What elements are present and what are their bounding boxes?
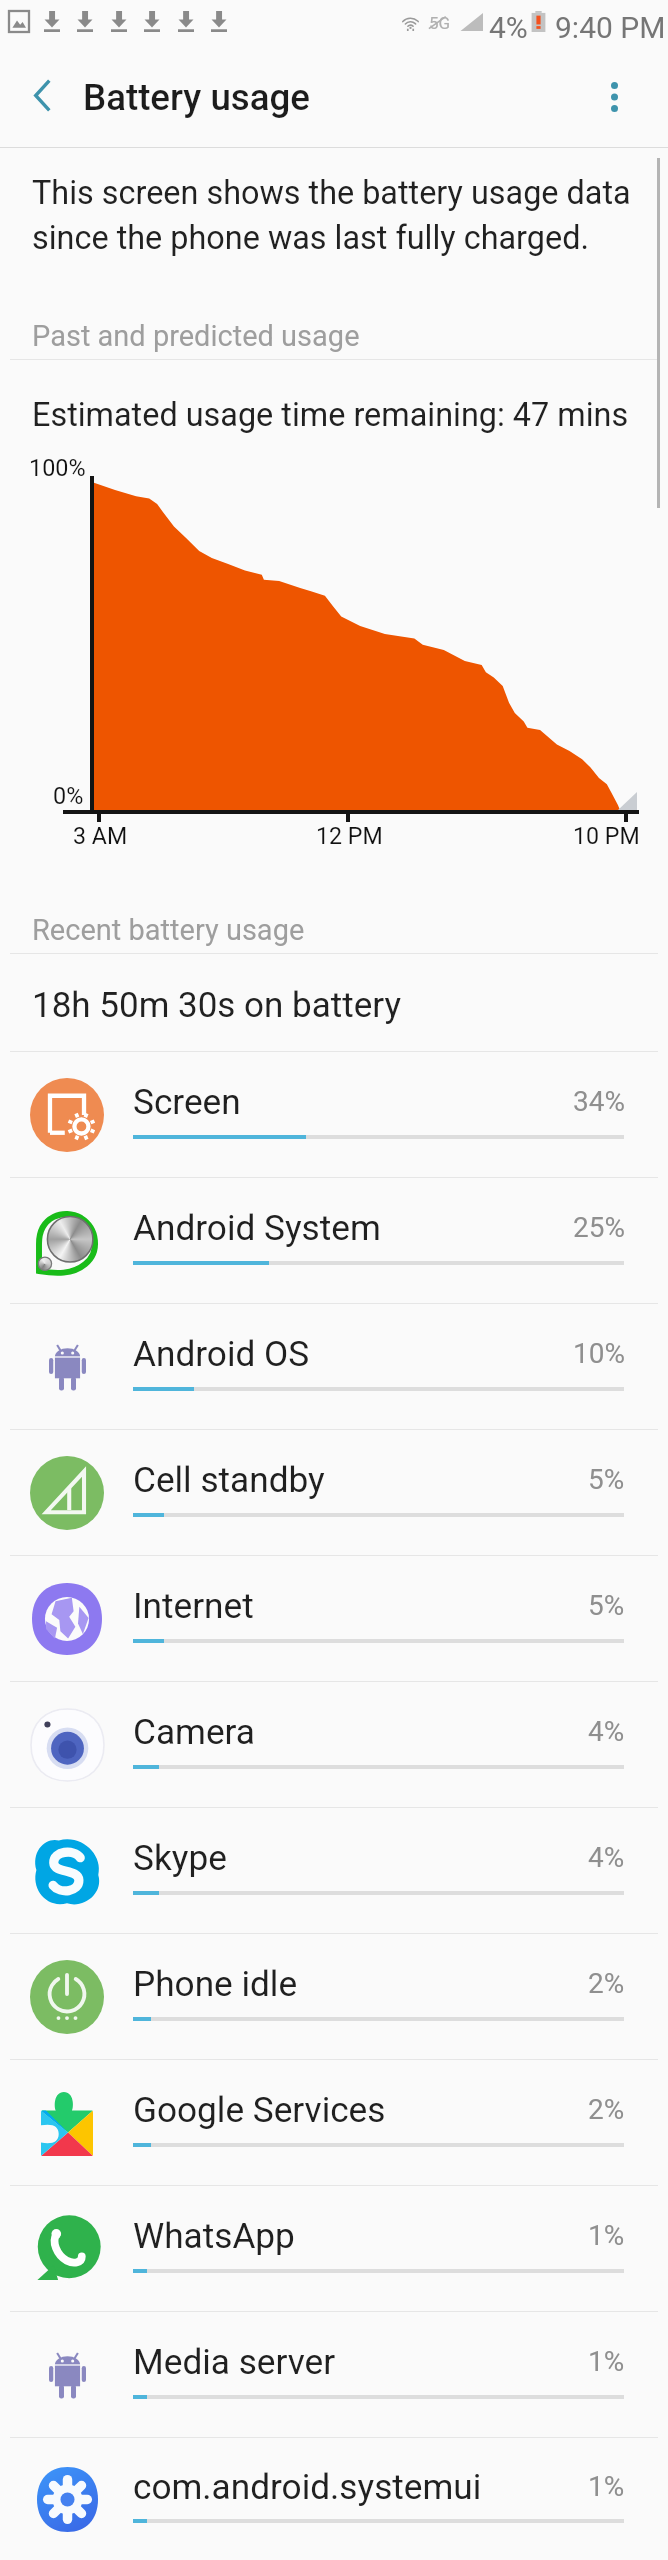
staticText: Camera bbox=[133, 1711, 255, 1752]
staticText: 25% bbox=[573, 1211, 625, 1244]
staticText: 100% bbox=[29, 454, 86, 481]
staticText: 1% bbox=[588, 2470, 625, 2503]
button[interactable]: Android System bbox=[0, 1178, 668, 1304]
button[interactable]: Back bbox=[10, 50, 74, 140]
button[interactable]: Screen bbox=[0, 1052, 668, 1178]
staticText: 12 PM bbox=[316, 822, 383, 849]
staticText: This screen shows the battery usage data… bbox=[32, 174, 640, 257]
staticText: 3 AM bbox=[73, 822, 128, 849]
button[interactable]: WhatsApp bbox=[0, 2186, 668, 2312]
staticText: Screen bbox=[133, 1081, 241, 1122]
staticText: 5% bbox=[588, 1589, 625, 1622]
button[interactable]: Cell standby bbox=[0, 1430, 668, 1556]
staticText: 10% bbox=[573, 1337, 625, 1370]
button[interactable]: More options bbox=[586, 52, 642, 142]
staticText: 1% bbox=[588, 2219, 625, 2252]
button[interactable]: Google Services bbox=[0, 2060, 668, 2186]
staticText: 10 PM bbox=[573, 822, 640, 849]
button[interactable]: Skype bbox=[0, 1808, 668, 1934]
button[interactable]: Camera bbox=[0, 1682, 668, 1808]
staticText: Android System bbox=[133, 1207, 381, 1248]
staticText: 4% bbox=[588, 1841, 625, 1874]
staticText: 5% bbox=[588, 1463, 625, 1496]
staticText: 9:40 PM bbox=[555, 10, 666, 45]
staticText: Internet bbox=[133, 1585, 254, 1626]
staticText: 4% bbox=[588, 1715, 625, 1748]
staticText: 2% bbox=[588, 2093, 625, 2126]
staticText: Media server bbox=[133, 2341, 336, 2382]
button[interactable]: Internet bbox=[0, 1556, 668, 1682]
staticText: 0% bbox=[53, 782, 84, 809]
button[interactable]: Android OS bbox=[0, 1304, 668, 1430]
button[interactable]: Media server bbox=[0, 2312, 668, 2438]
staticText: Google Services bbox=[133, 2089, 386, 2130]
button[interactable]: Phone idle bbox=[0, 1934, 668, 2060]
button[interactable]: com.android.systemui bbox=[0, 2438, 668, 2560]
staticText: com.android.systemui bbox=[133, 2466, 482, 2507]
staticText: Recent battery usage bbox=[32, 913, 305, 947]
staticText: Phone idle bbox=[133, 1963, 298, 2004]
staticText: Past and predicted usage bbox=[32, 319, 360, 353]
staticText: 5G bbox=[429, 13, 451, 33]
staticText: Android OS bbox=[133, 1333, 310, 1374]
staticText: 1% bbox=[588, 2345, 625, 2378]
staticText: Battery usage bbox=[83, 76, 310, 119]
staticText: WhatsApp bbox=[133, 2215, 295, 2256]
staticText: 2% bbox=[588, 1967, 625, 2000]
staticText: Cell standby bbox=[133, 1459, 325, 1500]
staticText: Estimated usage time remaining: 47 mins bbox=[32, 396, 629, 434]
staticText: 4% bbox=[489, 10, 528, 45]
staticText: Skype bbox=[133, 1837, 227, 1878]
staticText: 34% bbox=[573, 1085, 625, 1118]
staticText: 18h 50m 30s on battery bbox=[32, 985, 401, 1026]
